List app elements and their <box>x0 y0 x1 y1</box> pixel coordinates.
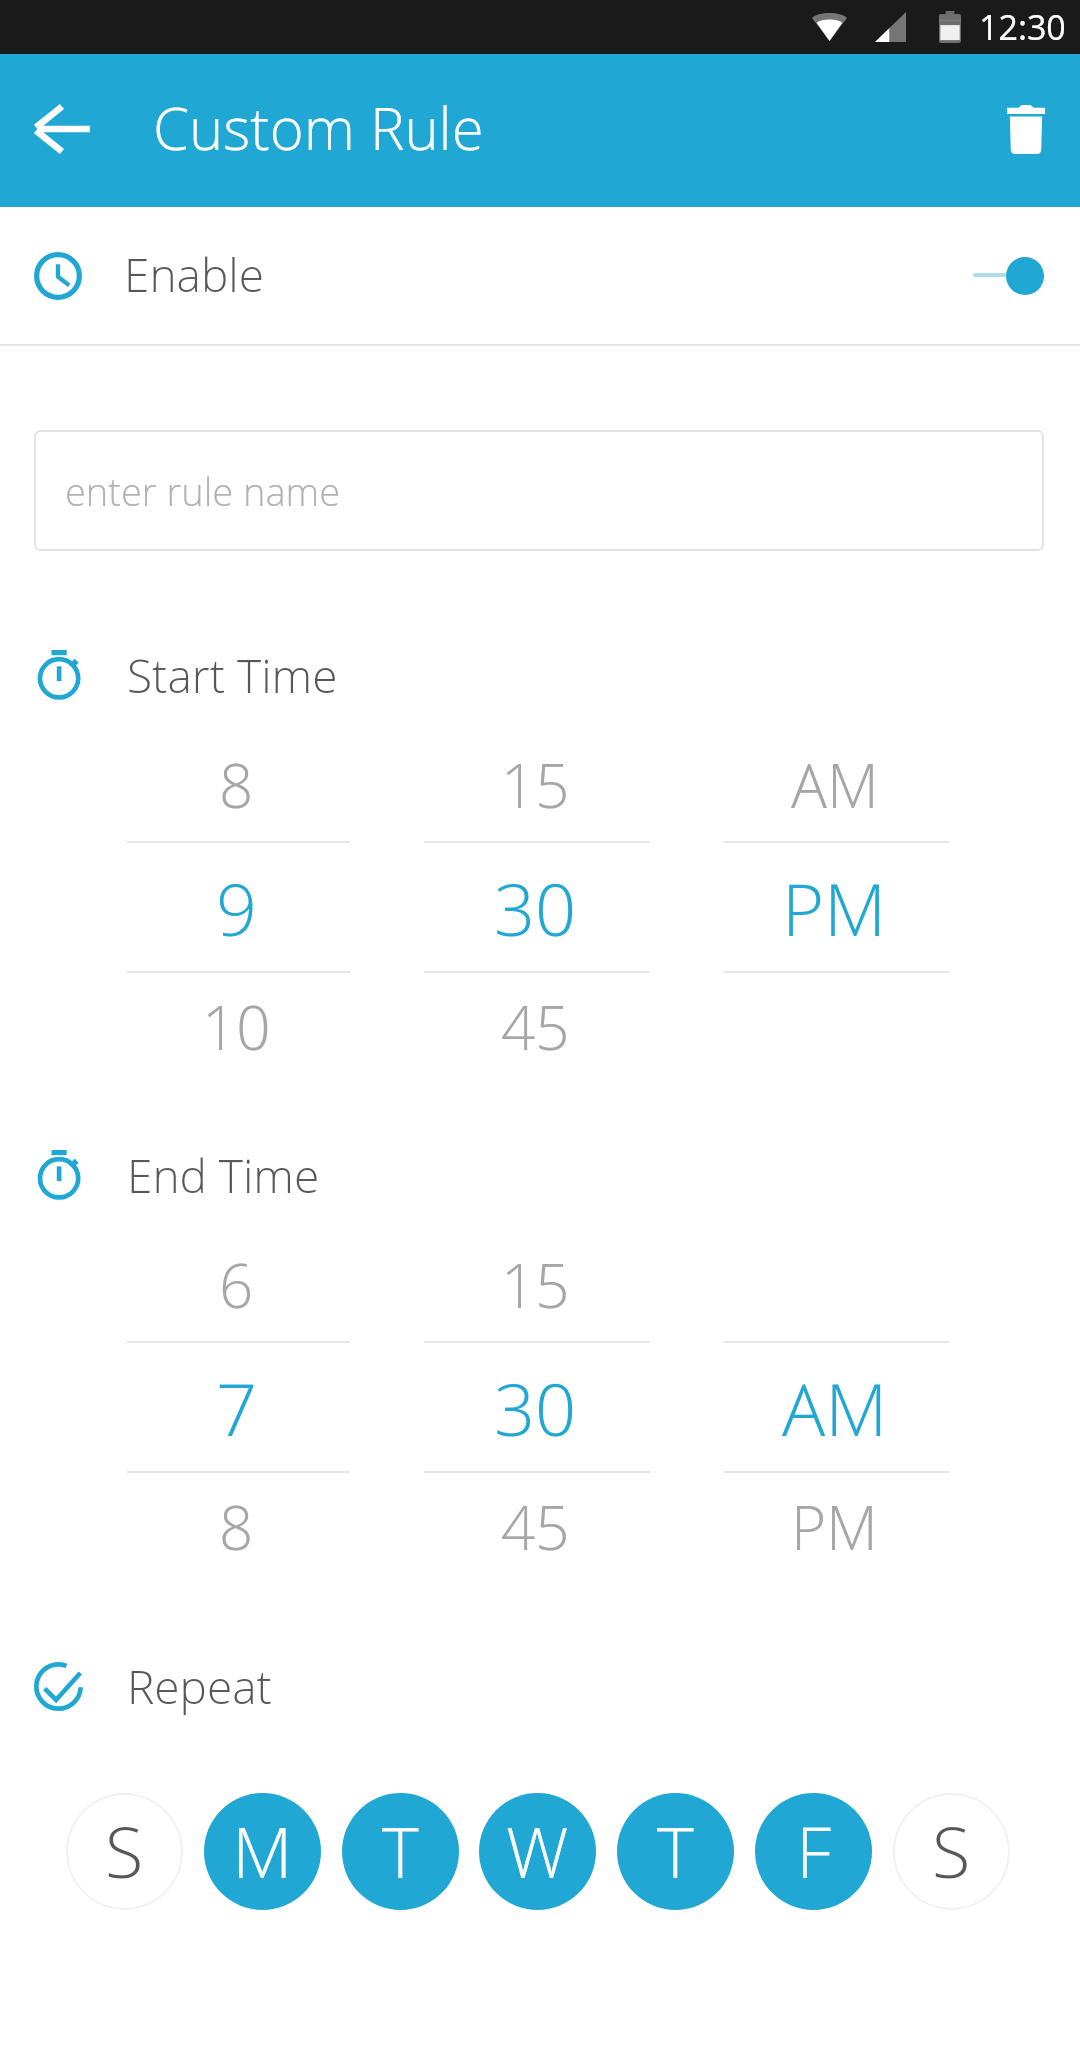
staticText: 15 <box>501 744 570 826</box>
button[interactable]: F <box>755 1793 872 1910</box>
button[interactable]: 8 <box>125 735 348 835</box>
button[interactable]: 10 <box>125 977 348 1077</box>
button[interactable]: S <box>66 1793 183 1910</box>
staticText: End Time <box>127 1144 320 1204</box>
staticText: 45 <box>501 1486 570 1568</box>
button[interactable]: Delete rule <box>970 73 1080 185</box>
button[interactable]: 15 <box>422 1235 648 1335</box>
staticText: 6 <box>219 1244 254 1326</box>
staticText: 8 <box>219 1486 254 1568</box>
staticText: 9 <box>216 859 258 957</box>
staticText: Custom Rule <box>153 88 484 167</box>
button[interactable]: 45 <box>422 1477 648 1577</box>
staticText: 10 <box>202 986 271 1068</box>
staticText: PM <box>782 859 887 957</box>
staticText: 12:30 <box>979 4 1066 50</box>
staticText: F <box>796 1803 832 1898</box>
staticText: AM <box>782 1359 888 1457</box>
button[interactable]: 45 <box>422 977 648 1077</box>
button[interactable]: AM <box>722 1358 947 1458</box>
button[interactable]: 15 <box>422 735 648 835</box>
staticText: 15 <box>501 1244 570 1326</box>
button[interactable]: AM <box>722 735 947 835</box>
staticText: W <box>506 1803 569 1898</box>
button[interactable]: Enable toggle <box>970 241 1080 311</box>
staticText: 45 <box>501 986 570 1068</box>
staticText: 8 <box>219 744 254 826</box>
button[interactable]: W <box>479 1793 596 1910</box>
staticText: enter rule name <box>65 465 340 517</box>
button[interactable]: M <box>204 1793 321 1910</box>
staticText: AM <box>791 744 879 826</box>
staticText: 7 <box>216 1359 258 1457</box>
staticText: T <box>382 1803 419 1898</box>
button[interactable]: 30 <box>422 858 648 958</box>
button[interactable]: 30 <box>422 1358 648 1458</box>
button[interactable]: Navigate up <box>6 73 118 185</box>
staticText: M <box>232 1803 293 1898</box>
staticText: PM <box>791 1486 878 1568</box>
staticText: S <box>932 1803 971 1898</box>
button[interactable]: enter rule name <box>34 430 1044 551</box>
button[interactable]: 8 <box>125 1477 348 1577</box>
button[interactable]: PM <box>722 858 947 958</box>
staticText: Start Time <box>127 644 338 704</box>
button[interactable]: Enable <box>0 207 1080 344</box>
button[interactable]: 7 <box>125 1358 348 1458</box>
button[interactable]: S <box>893 1793 1010 1910</box>
button[interactable]: 6 <box>125 1235 348 1335</box>
button[interactable]: T <box>617 1793 734 1910</box>
staticText: 30 <box>494 1359 577 1457</box>
staticText: T <box>657 1803 694 1898</box>
staticText: Enable <box>124 243 264 306</box>
staticText: 30 <box>494 859 577 957</box>
button[interactable]: PM <box>722 1477 947 1577</box>
button[interactable]: 9 <box>125 858 348 958</box>
staticText: Repeat <box>127 1655 272 1715</box>
button[interactable]: T <box>342 1793 459 1910</box>
staticText: S <box>105 1803 144 1898</box>
